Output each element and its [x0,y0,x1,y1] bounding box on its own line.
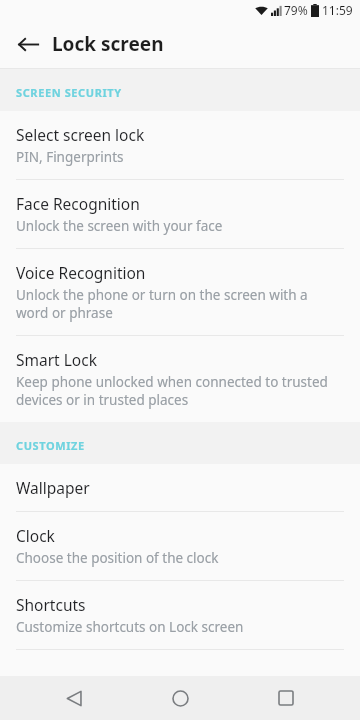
staticText: Face Recognition [16,193,140,214]
button[interactable]: Shortcuts [0,581,360,649]
button[interactable]: Select screen lock [0,111,360,179]
staticText: Wallpaper [16,477,90,498]
button[interactable]: Wallpaper [0,464,360,511]
staticText: SCREEN SECURITY [16,85,122,100]
staticText: Unlock the phone or turn on the screen w… [16,286,336,322]
button[interactable]: Home [148,676,212,720]
staticText: CUSTOMIZE [16,438,85,453]
button[interactable]: Recent apps [254,676,318,720]
staticText: Unlock the screen with your face [16,217,223,235]
staticText: Choose the position of the clock [16,549,219,567]
staticText: Clock [16,525,55,546]
staticText: Voice Recognition [16,262,146,283]
staticText: Keep phone unlocked when connected to tr… [16,373,336,409]
button[interactable]: Face Recognition [0,180,360,248]
staticText: Customize shortcuts on Lock screen [16,618,244,636]
staticText: 11:59 [322,2,353,18]
staticText: Select screen lock [16,124,145,145]
staticText: Lock screen [52,31,164,57]
button[interactable]: Smart Lock [0,336,360,422]
staticText: Smart Lock [16,349,97,370]
button[interactable]: Clock [0,512,360,580]
staticText: 79% [284,2,308,18]
button[interactable]: Back [42,676,106,720]
staticText: PIN, Fingerprints [16,148,124,166]
staticText: Shortcuts [16,594,86,615]
button[interactable]: Back [8,24,48,64]
button[interactable]: Voice Recognition [0,249,360,335]
